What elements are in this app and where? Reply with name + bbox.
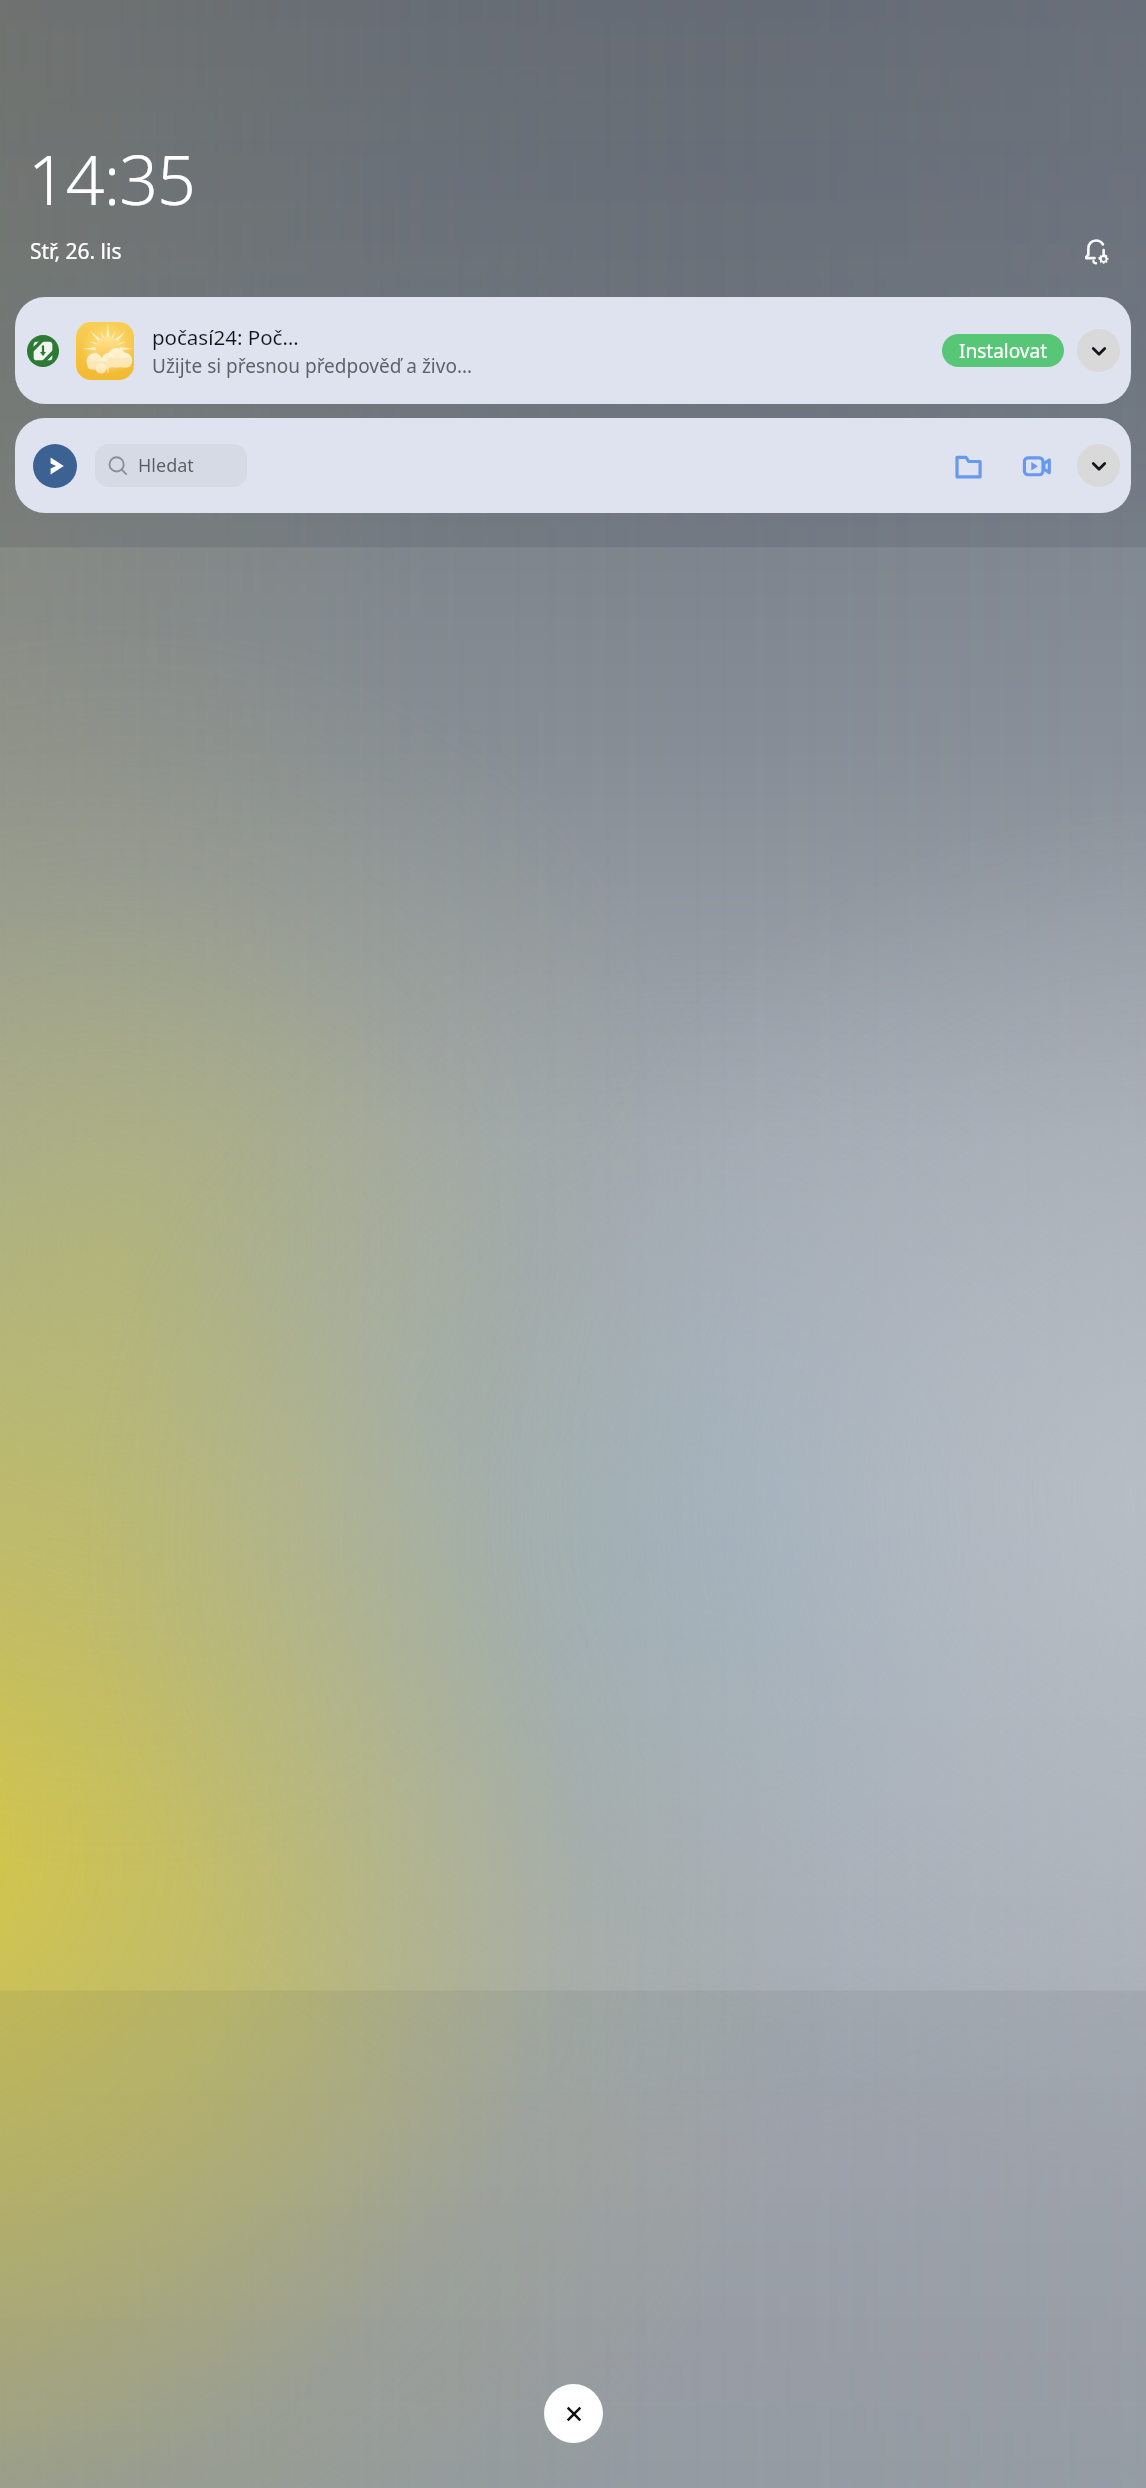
- staticText: Instalovat: [959, 338, 1047, 364]
- button[interactable]: Hledat: [95, 444, 247, 487]
- button[interactable]: Clear all notifications: [544, 2384, 603, 2443]
- button[interactable]: Instalovat: [942, 334, 1064, 367]
- button[interactable]: Expand notification: [1077, 329, 1120, 372]
- staticText: Stř, 26. lis: [30, 237, 122, 266]
- button[interactable]: počasí24: Poč…: [15, 297, 1131, 404]
- staticText: počasí24: Poč…: [152, 323, 299, 351]
- staticText: 14:35: [28, 132, 195, 225]
- staticText: Hledat: [138, 453, 194, 478]
- button[interactable]: Player: [15, 418, 1131, 513]
- button[interactable]: Notification settings: [1076, 231, 1116, 271]
- button[interactable]: Player: [33, 444, 77, 488]
- staticText: Užijte si přesnou předpověď a živo…: [152, 353, 472, 379]
- button[interactable]: Expand notification: [1077, 444, 1120, 487]
- button[interactable]: Files: [945, 442, 993, 490]
- button[interactable]: Videos: [1013, 442, 1061, 490]
